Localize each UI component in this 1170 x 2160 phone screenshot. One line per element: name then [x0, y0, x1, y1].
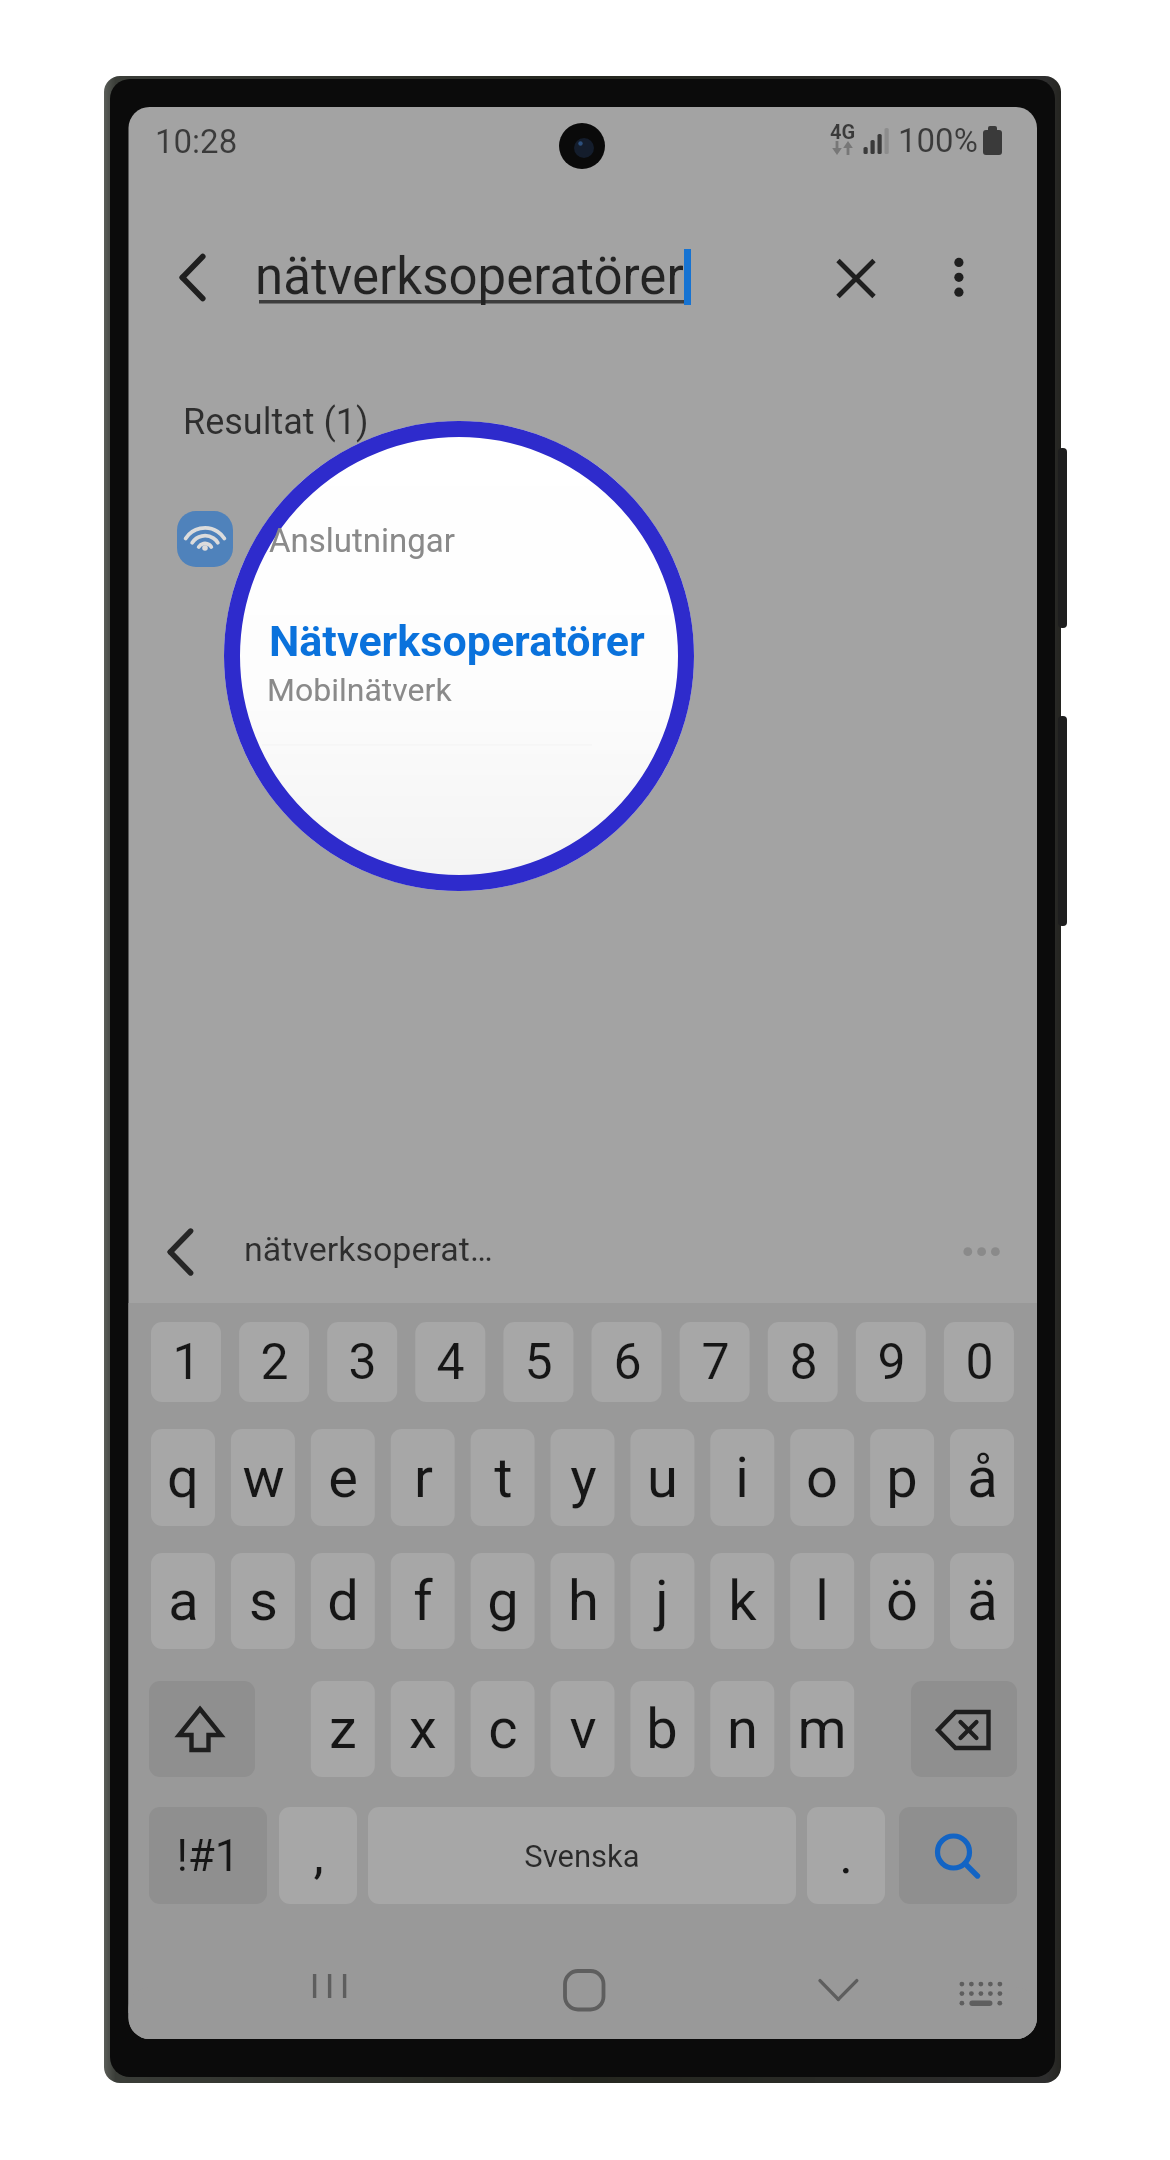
button[interactable]: , [279, 1807, 357, 1904]
button[interactable]: 6 [592, 1322, 662, 1402]
button[interactable]: Backspace [911, 1681, 1017, 1777]
button[interactable]: More options [924, 238, 998, 320]
button[interactable]: a [151, 1553, 215, 1649]
staticText: v [569, 1696, 597, 1762]
button[interactable]: b [630, 1681, 694, 1777]
staticText: å [967, 1445, 998, 1511]
staticText: t [494, 1445, 513, 1511]
button[interactable]: w [231, 1429, 295, 1526]
button[interactable]: nätverksoperat… [244, 1222, 564, 1286]
button[interactable]: 2 [239, 1322, 309, 1402]
button[interactable]: x [391, 1681, 455, 1777]
staticText: w [242, 1445, 285, 1511]
button[interactable]: h [551, 1553, 615, 1649]
staticText: 3 [348, 1333, 377, 1392]
button[interactable]: f [391, 1553, 455, 1649]
staticText: q [167, 1445, 199, 1511]
staticText: 10:28 [155, 122, 238, 161]
button[interactable]: 5 [503, 1322, 573, 1402]
button[interactable]: Clear search [820, 238, 894, 320]
staticText: k [728, 1568, 757, 1634]
button[interactable]: !#1 [149, 1807, 267, 1904]
button[interactable]: Recents [282, 1955, 382, 2021]
button[interactable]: 0 [944, 1322, 1014, 1402]
button[interactable]: 9 [856, 1322, 926, 1402]
staticText: h [568, 1568, 599, 1634]
staticText: s [249, 1568, 278, 1634]
button[interactable]: 4 [415, 1322, 485, 1402]
button[interactable]: Svenska [368, 1807, 796, 1904]
staticText: 5 [524, 1333, 553, 1392]
button[interactable]: m [790, 1681, 854, 1777]
button[interactable]: i [710, 1429, 774, 1526]
staticText: u [647, 1445, 678, 1511]
button[interactable]: Search [899, 1807, 1017, 1904]
staticText: i [735, 1445, 749, 1511]
button[interactable]: q [151, 1429, 215, 1526]
staticText: d [327, 1568, 359, 1634]
staticText: l [815, 1568, 829, 1634]
button[interactable]: å [950, 1429, 1014, 1526]
staticText: r [414, 1445, 433, 1511]
button[interactable]: ö [870, 1553, 934, 1649]
button[interactable]: More suggestions [930, 1214, 1010, 1294]
button[interactable]: o [790, 1429, 854, 1526]
button[interactable]: Shift [149, 1681, 255, 1777]
button[interactable]: e [311, 1429, 375, 1526]
staticText: 7 [701, 1333, 730, 1392]
button[interactable]: v [551, 1681, 615, 1777]
staticText: p [886, 1445, 918, 1511]
button[interactable]: 8 [768, 1322, 838, 1402]
button[interactable]: l [790, 1553, 854, 1649]
staticText: nätverksoperatörer [255, 247, 684, 307]
staticText: Nätverksoperatörer [269, 616, 645, 666]
staticText: Svenska [524, 1838, 640, 1874]
button[interactable]: Hide keyboard [932, 1955, 1032, 2021]
button[interactable]: Back [158, 238, 228, 320]
button[interactable]: c [471, 1681, 535, 1777]
staticText: ä [967, 1568, 998, 1634]
button[interactable]: 7 [680, 1322, 750, 1402]
button[interactable]: j [630, 1553, 694, 1649]
button[interactable]: r [391, 1429, 455, 1526]
button[interactable]: z [311, 1681, 375, 1777]
staticText: ö [886, 1568, 918, 1634]
staticText: c [488, 1696, 518, 1762]
staticText: 100% [898, 121, 978, 160]
staticText: 4G [830, 120, 856, 143]
staticText: n [727, 1696, 758, 1762]
staticText: . [839, 1825, 853, 1886]
button[interactable]: nätverksoperatörer [256, 240, 696, 320]
staticText: m [797, 1696, 847, 1762]
staticText: Resultat (1) [183, 401, 369, 443]
button[interactable]: 1 [151, 1322, 221, 1402]
button[interactable]: k [710, 1553, 774, 1649]
button[interactable]: y [551, 1429, 615, 1526]
staticText: f [413, 1568, 433, 1634]
staticText: g [487, 1568, 519, 1634]
staticText: 2 [260, 1333, 289, 1392]
staticText: x [409, 1696, 437, 1762]
staticText: !#1 [176, 1830, 240, 1882]
button[interactable]: s [231, 1553, 295, 1649]
button[interactable]: Previous suggestion [150, 1214, 230, 1294]
button[interactable] [160, 495, 720, 715]
button[interactable]: Home [532, 1955, 632, 2021]
staticText: j [655, 1568, 669, 1634]
button[interactable]: . [807, 1807, 885, 1904]
button[interactable]: ä [950, 1553, 1014, 1649]
staticText: y [570, 1445, 597, 1511]
button[interactable]: p [870, 1429, 934, 1526]
staticText: 0 [965, 1333, 994, 1392]
staticText: , [313, 1825, 324, 1886]
staticText: 9 [877, 1333, 906, 1392]
staticText: z [329, 1696, 357, 1762]
button[interactable]: d [311, 1553, 375, 1649]
button[interactable]: u [630, 1429, 694, 1526]
button[interactable]: n [710, 1681, 774, 1777]
button[interactable]: Back [787, 1955, 887, 2021]
button[interactable]: 3 [327, 1322, 397, 1402]
button[interactable]: t [471, 1429, 535, 1526]
staticText: Anslutningar [269, 521, 455, 560]
button[interactable]: g [471, 1553, 535, 1649]
